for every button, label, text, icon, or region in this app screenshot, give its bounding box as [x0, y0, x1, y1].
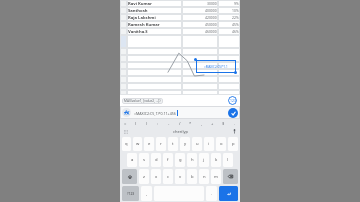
staticText: 10% — [232, 8, 239, 13]
staticText: 123 — [230, 98, 236, 103]
button[interactable]: , — [141, 186, 152, 201]
button[interactable]: x — [151, 169, 161, 184]
button[interactable]: c — [163, 169, 173, 184]
staticText: =MAX(C2:C5)*1.1 — [204, 65, 228, 69]
staticText: i — [208, 141, 210, 147]
staticText: 45% — [232, 22, 239, 27]
button[interactable]: l — [223, 153, 233, 167]
button[interactable]: u — [192, 137, 202, 151]
button[interactable]: f — [163, 153, 173, 167]
button[interactable]: cherilyp — [132, 127, 228, 136]
button[interactable]: , — [196, 119, 207, 127]
button[interactable]: = — [120, 119, 130, 127]
button[interactable]: Symbols — [122, 186, 139, 201]
button[interactable]: i — [204, 137, 214, 151]
staticText: 460000 — [205, 29, 217, 34]
staticText: s — [143, 157, 146, 163]
button[interactable]: - — [163, 119, 174, 127]
staticText: z — [143, 174, 145, 180]
button[interactable]: Enter — [219, 186, 238, 201]
button[interactable]: j — [199, 153, 209, 167]
staticText: , — [146, 191, 148, 197]
staticText: h — [191, 157, 194, 163]
button[interactable]: d — [151, 153, 161, 167]
button[interactable]: o — [216, 137, 226, 151]
button[interactable]: ( — [130, 119, 141, 127]
staticText: 450000 — [205, 22, 217, 27]
button[interactable]: Accept formula — [228, 108, 238, 118]
staticText: =MAX(C2:C5,1)*0.11+456 — [134, 111, 176, 116]
button[interactable]: Backspace — [223, 169, 238, 184]
staticText: 420000 — [205, 15, 217, 20]
staticText: d — [155, 157, 158, 163]
button[interactable]: p — [228, 137, 238, 151]
staticText: e — [148, 141, 151, 147]
staticText: Ramesh Kumar — [128, 22, 160, 28]
button[interactable]: t — [168, 137, 178, 151]
staticText: Santhosh — [128, 8, 148, 14]
button[interactable]: r — [156, 137, 166, 151]
staticText: n — [203, 174, 206, 180]
button[interactable]: Functions — [122, 108, 131, 117]
button[interactable]: Emoji — [120, 127, 132, 136]
staticText: t — [172, 141, 174, 147]
button[interactable]: q — [122, 137, 131, 151]
staticText: Ravi Kumar — [128, 1, 152, 7]
staticText: ?123 — [127, 191, 135, 196]
button[interactable]: s — [139, 153, 149, 167]
button[interactable]: w — [133, 137, 142, 151]
staticText: MAX(value1, [value2, ...]) — [124, 99, 161, 103]
staticText: b — [191, 174, 194, 180]
button[interactable]: $ — [218, 119, 229, 127]
button[interactable]: : — [152, 119, 163, 127]
button[interactable]: Shift — [122, 169, 137, 184]
button[interactable]: ) — [141, 119, 152, 127]
button[interactable]: k — [211, 153, 221, 167]
staticText: m — [214, 174, 218, 180]
button[interactable]: z — [139, 169, 149, 184]
button[interactable]: Voice input — [228, 127, 240, 136]
button[interactable]: / — [174, 119, 185, 127]
button[interactable]: b — [187, 169, 197, 184]
staticText: c — [167, 174, 170, 180]
button[interactable]: + — [207, 119, 218, 127]
button[interactable]: g — [175, 153, 185, 167]
button[interactable]: m — [211, 169, 221, 184]
button[interactable]: h — [187, 153, 197, 167]
button[interactable]: =MAX(C2:C5,1)*0.11+456 — [134, 110, 224, 116]
staticText: . — [234, 121, 236, 126]
staticText: cherilyp — [173, 129, 188, 134]
staticText: 30000 — [207, 1, 217, 6]
button[interactable]: MAX(value1, [value2, ...]) — [122, 98, 163, 104]
staticText: x — [155, 174, 158, 180]
staticText: j — [203, 157, 205, 163]
button[interactable]: Number keyboard — [228, 96, 237, 105]
staticText: q — [125, 141, 128, 147]
staticText: * — [189, 121, 192, 126]
button[interactable]: e — [144, 137, 154, 151]
staticText: 22% — [232, 15, 239, 20]
staticText: , — [201, 121, 203, 126]
staticText: o — [220, 141, 223, 147]
staticText: u — [196, 141, 199, 147]
button[interactable]: y — [180, 137, 190, 151]
staticText: y — [184, 141, 187, 147]
staticText: l — [227, 157, 229, 163]
staticText: $ — [222, 121, 225, 126]
staticText: v — [179, 174, 182, 180]
staticText: p — [232, 141, 235, 147]
button[interactable]: a — [127, 153, 137, 167]
staticText: 9% — [234, 1, 239, 6]
staticText: r — [160, 141, 162, 147]
button[interactable]: v — [175, 169, 185, 184]
staticText: 46% — [232, 29, 239, 34]
button[interactable]: n — [199, 169, 209, 184]
staticText: = — [124, 121, 127, 126]
button[interactable]: * — [185, 119, 196, 127]
staticText: + — [211, 121, 214, 126]
staticText: 400000 — [205, 8, 217, 13]
staticText: ) — [146, 121, 148, 126]
